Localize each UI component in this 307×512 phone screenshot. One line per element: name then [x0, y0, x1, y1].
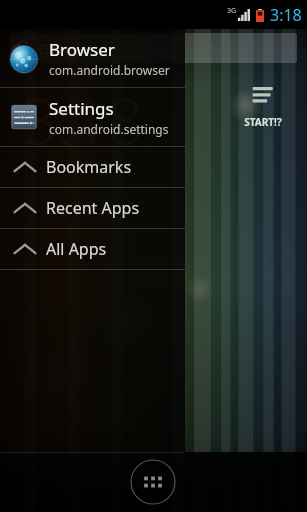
button[interactable]: Google: [10, 33, 297, 63]
button[interactable]: START!?: [235, 82, 291, 129]
staticText: 3G: [227, 6, 237, 16]
button[interactable]: All Apps: [0, 229, 185, 269]
staticText: Bookmarks: [46, 156, 132, 178]
staticText: START!?: [244, 115, 282, 129]
button[interactable]: All apps: [130, 459, 176, 505]
button[interactable]: Browser: [0, 29, 185, 87]
staticText: Settings: [49, 97, 114, 120]
staticText: Recent Apps: [46, 197, 140, 219]
staticText: 3:18: [22, 78, 144, 162]
button[interactable]: Bookmarks: [0, 147, 185, 187]
staticText: com.android.settings: [49, 121, 169, 137]
staticText: Google: [38, 38, 89, 58]
staticText: Browser: [49, 38, 115, 61]
staticText: All Apps: [46, 238, 107, 260]
staticText: WED, APRIL 24: [62, 156, 134, 168]
staticText: 3:18: [270, 4, 302, 26]
button[interactable]: Recent Apps: [0, 188, 185, 228]
button[interactable]: Settings: [0, 88, 185, 146]
staticText: com.android.browser: [49, 62, 170, 78]
